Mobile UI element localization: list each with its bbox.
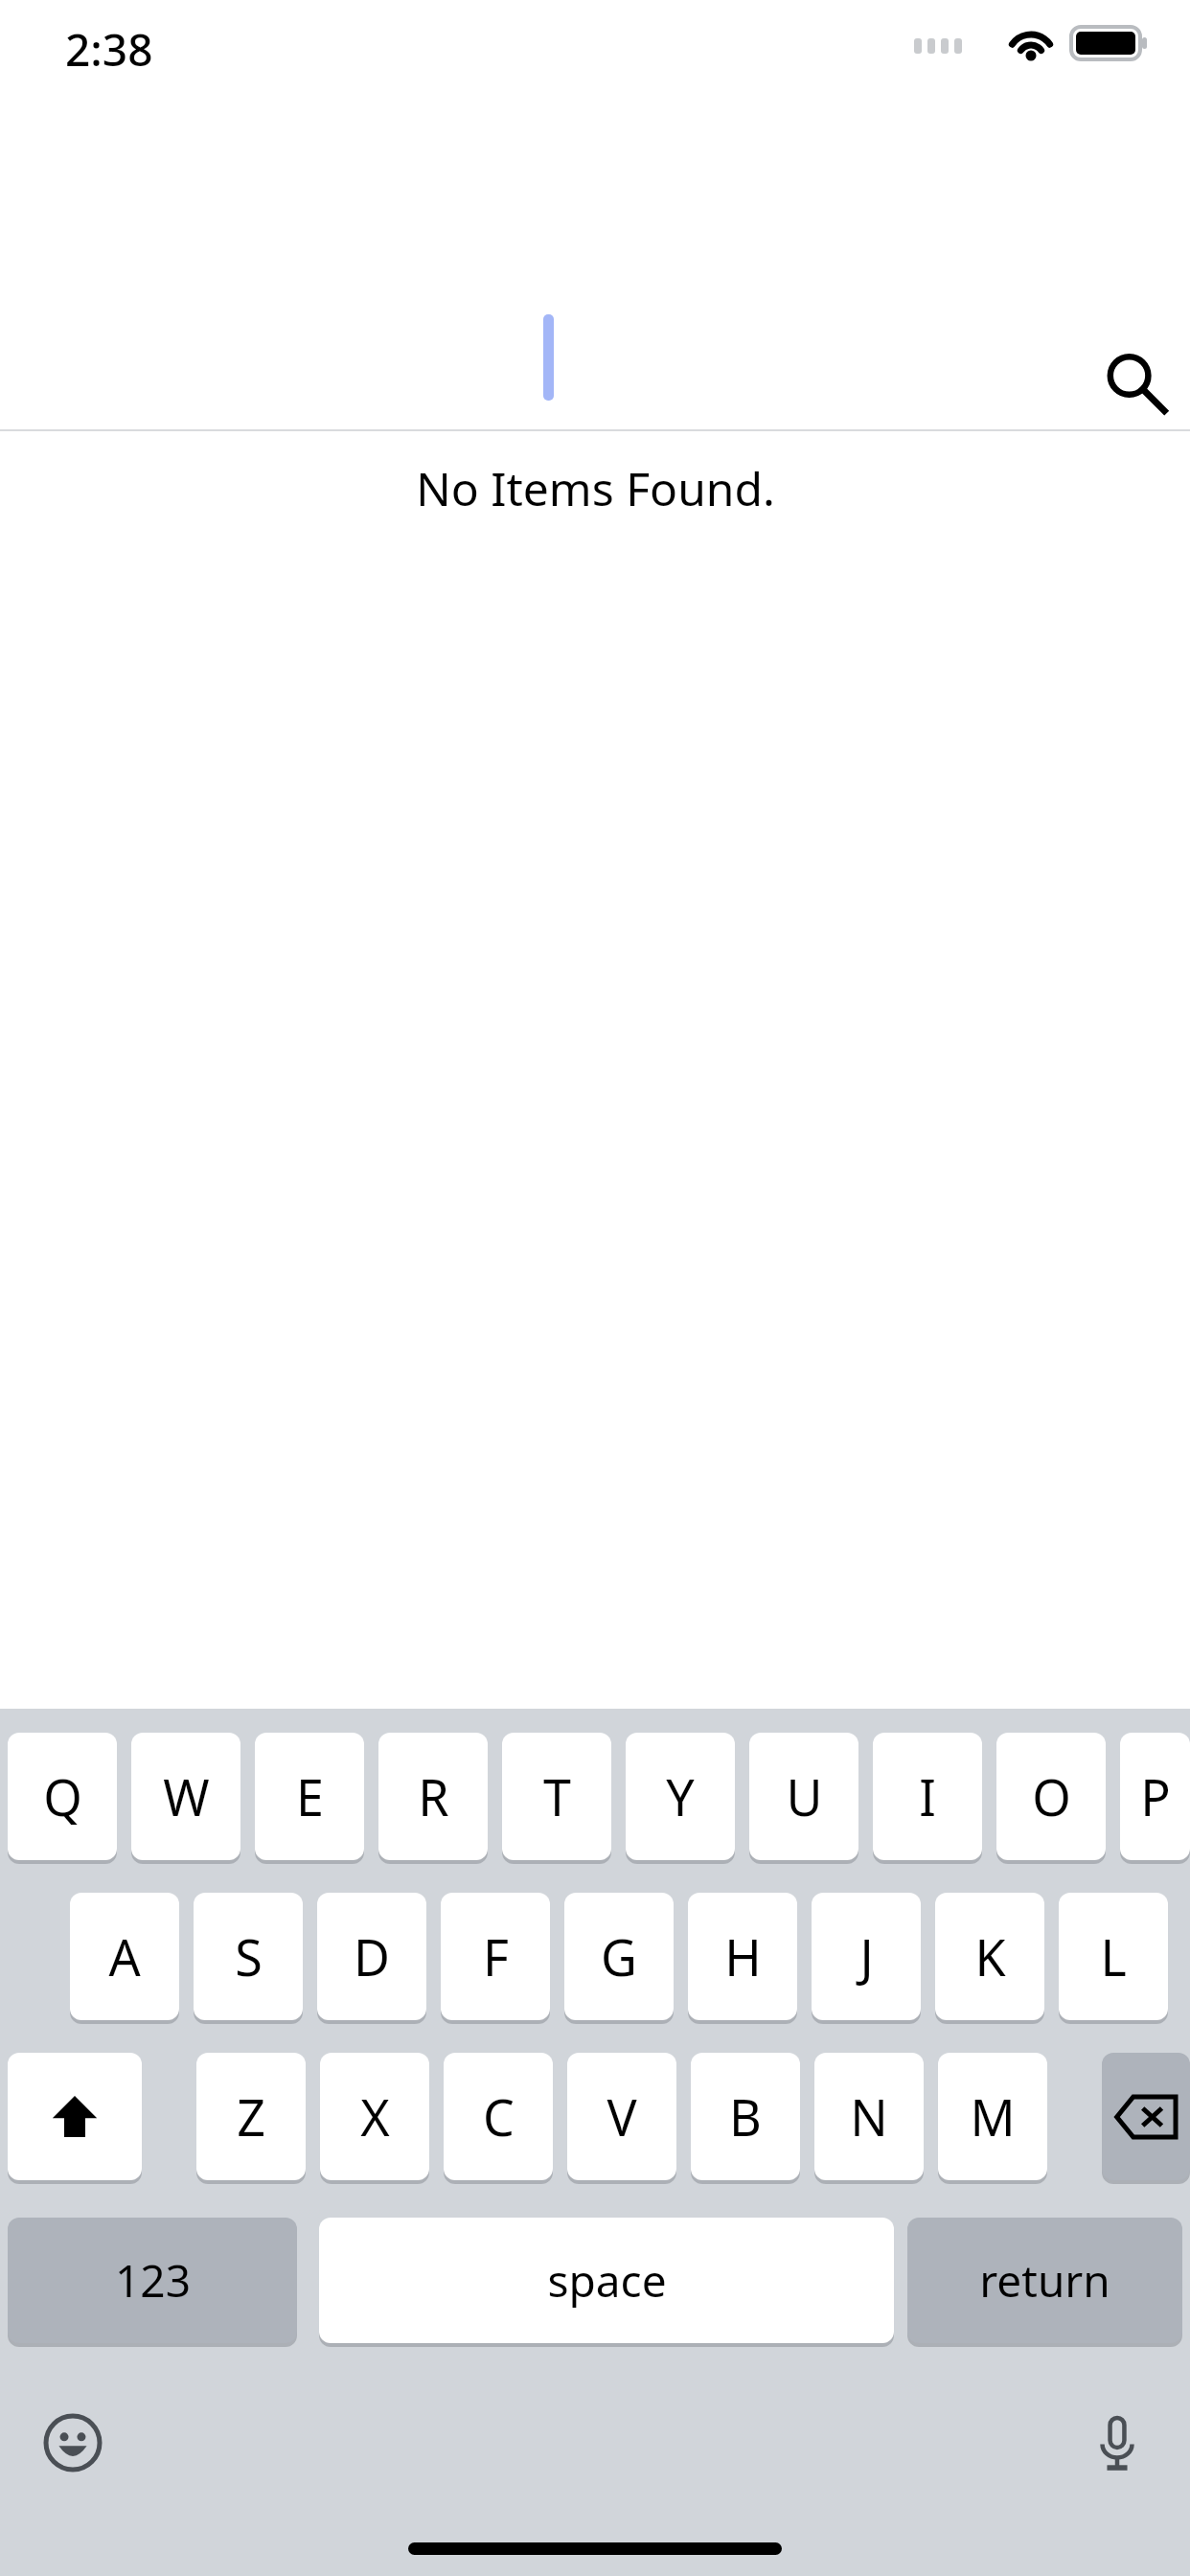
staticText: H	[724, 1922, 762, 1990]
button[interactable]: B	[691, 2053, 800, 2184]
button[interactable]	[8, 2053, 142, 2184]
staticText: G	[601, 1922, 637, 1990]
staticText: M	[970, 2082, 1016, 2150]
button[interactable]: E	[255, 1733, 364, 1864]
button[interactable]: T	[502, 1733, 611, 1864]
staticText: X	[360, 2082, 390, 2150]
staticText: L	[1100, 1922, 1127, 1990]
button[interactable]: U	[749, 1733, 858, 1864]
button[interactable]: G	[564, 1893, 674, 2024]
staticText: F	[483, 1922, 509, 1990]
staticText: V	[606, 2082, 637, 2150]
button[interactable]: W	[131, 1733, 240, 1864]
staticText: J	[859, 1922, 874, 1990]
staticText: N	[850, 2082, 888, 2150]
staticText: B	[729, 2082, 762, 2150]
button[interactable]	[1102, 2053, 1190, 2184]
button[interactable]: K	[935, 1893, 1044, 2024]
staticText: S	[235, 1922, 263, 1990]
staticText: 2:38	[65, 19, 153, 80]
staticText: 123	[115, 2250, 191, 2311]
button[interactable]: H	[688, 1893, 797, 2024]
staticText: P	[1140, 1762, 1171, 1830]
staticText: E	[296, 1762, 324, 1830]
staticText: I	[919, 1762, 936, 1830]
staticText: Q	[43, 1762, 82, 1830]
button[interactable]: Search	[0, 105, 1190, 429]
staticText: D	[354, 1922, 390, 1990]
staticText: space	[547, 2250, 667, 2311]
other: Backspace	[1102, 2053, 1190, 2184]
staticText: U	[786, 1762, 823, 1830]
other: Shift	[8, 2053, 142, 2184]
button[interactable]: Z	[196, 2053, 306, 2184]
button[interactable]: M	[938, 2053, 1047, 2184]
button[interactable]: R	[378, 1733, 488, 1864]
button[interactable]: 123	[8, 2218, 297, 2347]
button[interactable]: Dictation	[1081, 2406, 1154, 2479]
button[interactable]: C	[444, 2053, 553, 2184]
staticText: K	[974, 1922, 1006, 1990]
staticText: C	[483, 2082, 515, 2150]
staticText: Y	[666, 1762, 695, 1830]
button[interactable]: Y	[626, 1733, 735, 1864]
button[interactable]: N	[814, 2053, 924, 2184]
button[interactable]: A	[70, 1893, 179, 2024]
staticText: return	[979, 2250, 1110, 2311]
staticText: Z	[237, 2082, 265, 2150]
staticText: A	[108, 1922, 141, 1990]
button[interactable]: L	[1059, 1893, 1168, 2024]
staticText: T	[543, 1762, 571, 1830]
button[interactable]: D	[317, 1893, 426, 2024]
button[interactable]: J	[812, 1893, 921, 2024]
button[interactable]: Search	[1088, 335, 1180, 427]
button[interactable]: space	[319, 2218, 894, 2347]
staticText: W	[163, 1762, 210, 1830]
button[interactable]: F	[441, 1893, 550, 2024]
staticText: No Items Found.	[416, 457, 775, 519]
button[interactable]: return	[907, 2218, 1182, 2347]
staticText: O	[1032, 1762, 1071, 1830]
button[interactable]: Q	[8, 1733, 117, 1864]
staticText: R	[418, 1762, 449, 1830]
button[interactable]: P	[1120, 1733, 1190, 1864]
button[interactable]: I	[873, 1733, 982, 1864]
button[interactable]: S	[194, 1893, 303, 2024]
button[interactable]: V	[567, 2053, 676, 2184]
button[interactable]: X	[320, 2053, 429, 2184]
button[interactable]: Emoji	[36, 2406, 109, 2479]
button[interactable]: O	[996, 1733, 1106, 1864]
